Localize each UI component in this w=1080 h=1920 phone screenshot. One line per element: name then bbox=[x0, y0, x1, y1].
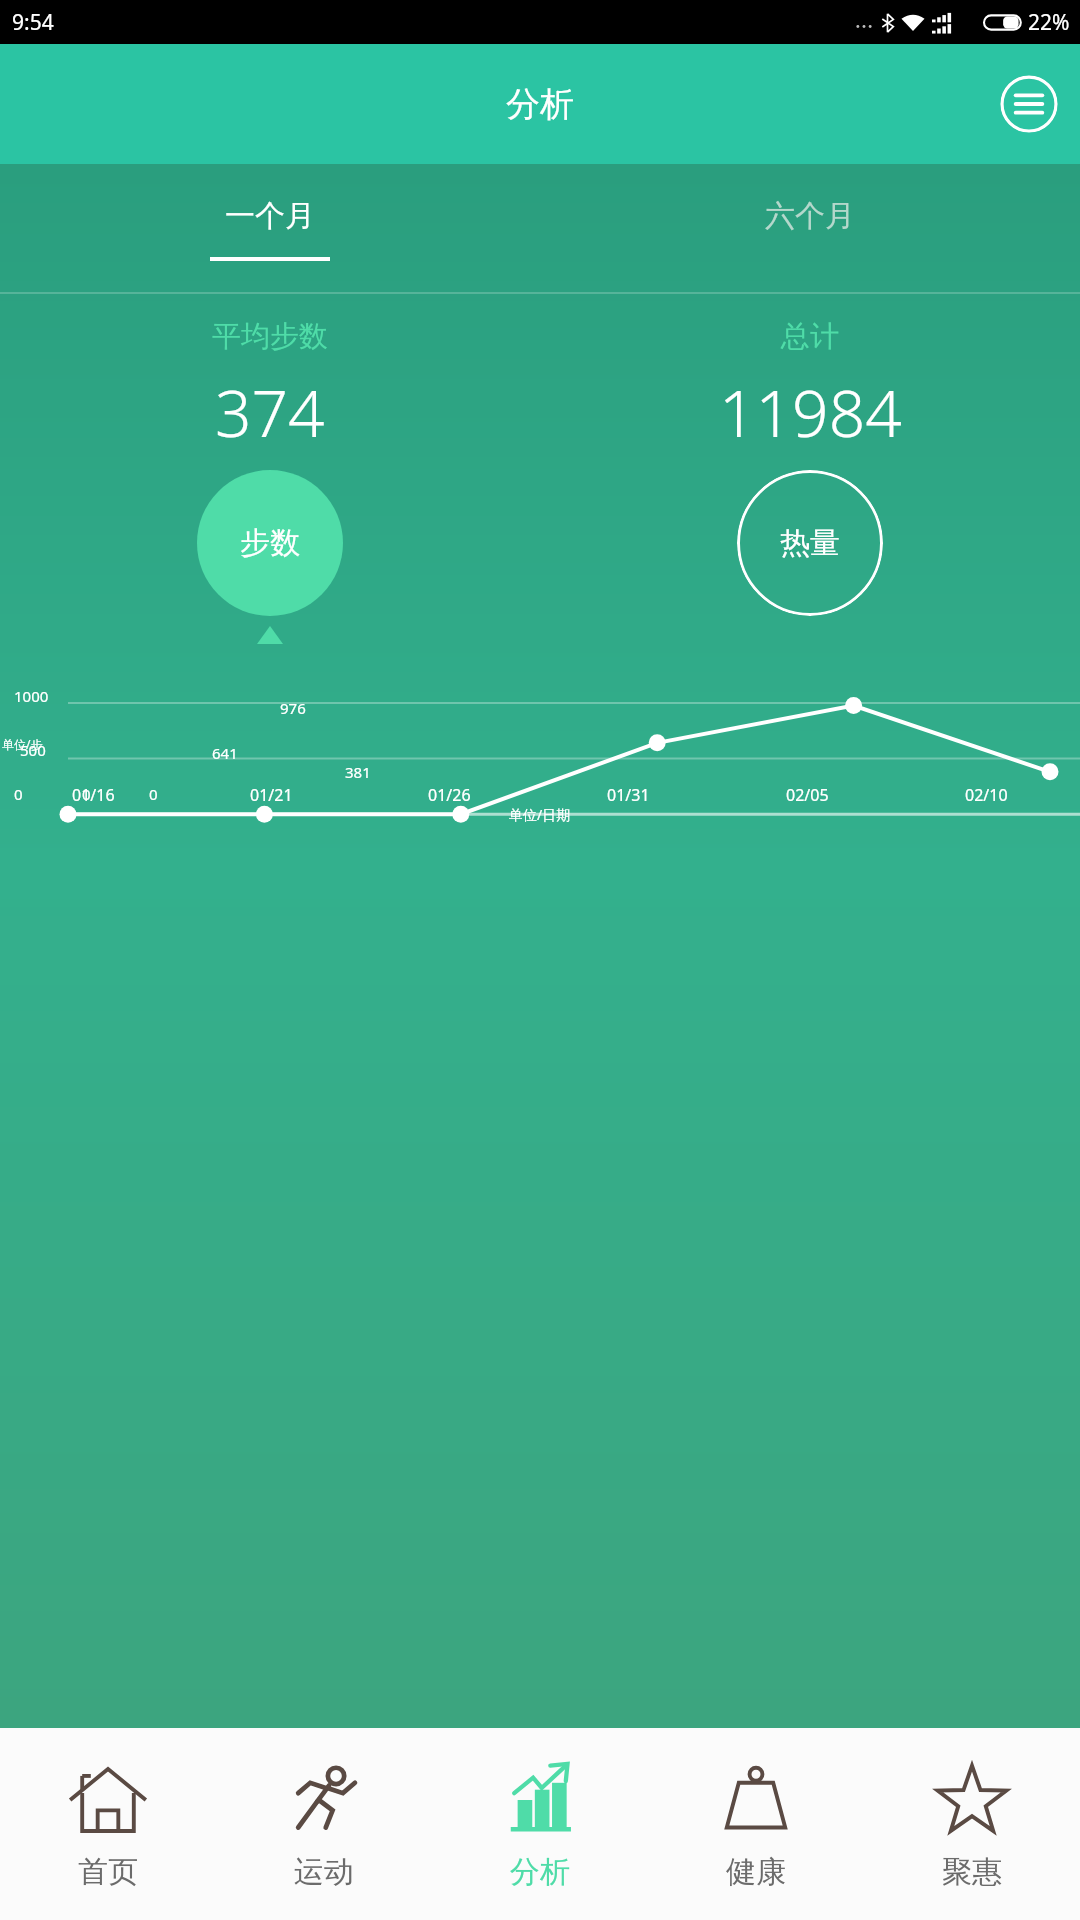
button[interactable]: Menu bbox=[1000, 75, 1058, 133]
staticText: 381 bbox=[345, 762, 371, 782]
staticText: 分析 bbox=[510, 1853, 570, 1891]
staticText: 02/05 bbox=[786, 784, 829, 806]
button[interactable]: 首页 bbox=[0, 1728, 216, 1920]
button[interactable]: 一个月 bbox=[0, 164, 540, 294]
staticText: 976 bbox=[280, 698, 306, 718]
staticText: 一个月 bbox=[225, 197, 315, 235]
staticText: 374 bbox=[215, 369, 325, 456]
staticText: 热量 bbox=[780, 524, 840, 562]
staticText: 单位/步 bbox=[2, 736, 43, 752]
button[interactable]: 步数 bbox=[197, 470, 343, 616]
staticText: 0 bbox=[14, 784, 23, 804]
staticText: 单位/日期 bbox=[509, 805, 571, 824]
staticText: 01/21 bbox=[250, 784, 293, 806]
staticText: 22% bbox=[1028, 8, 1070, 37]
staticText: 500 bbox=[20, 740, 46, 760]
staticText: 分析 bbox=[506, 83, 574, 126]
staticText: 平均步数 bbox=[212, 318, 328, 355]
staticText: 11984 bbox=[719, 369, 902, 456]
staticText: 0 bbox=[82, 784, 91, 804]
staticText: 首页 bbox=[78, 1853, 138, 1891]
staticText: 01/31 bbox=[607, 784, 650, 806]
staticText: 641 bbox=[212, 743, 238, 763]
staticText: 01/26 bbox=[428, 784, 471, 806]
button[interactable]: 六个月 bbox=[540, 164, 1080, 294]
staticText: 9:54 bbox=[12, 8, 54, 37]
button[interactable]: 运动 bbox=[216, 1728, 432, 1920]
staticText: 聚惠 bbox=[942, 1853, 1002, 1891]
button[interactable]: 健康 bbox=[648, 1728, 864, 1920]
staticText: 健康 bbox=[726, 1853, 786, 1891]
staticText: 运动 bbox=[294, 1853, 354, 1891]
staticText: 步数 bbox=[240, 524, 300, 562]
staticText: 0 bbox=[149, 784, 158, 804]
staticText: 六个月 bbox=[765, 197, 855, 235]
staticText: 1000 bbox=[14, 686, 49, 706]
staticText: 01/16 bbox=[72, 784, 115, 806]
button[interactable]: 分析 bbox=[432, 1728, 648, 1920]
staticText: 总计 bbox=[781, 318, 839, 355]
button[interactable]: 热量 bbox=[737, 470, 883, 616]
button[interactable]: 聚惠 bbox=[864, 1728, 1080, 1920]
staticText: 02/10 bbox=[965, 784, 1008, 806]
